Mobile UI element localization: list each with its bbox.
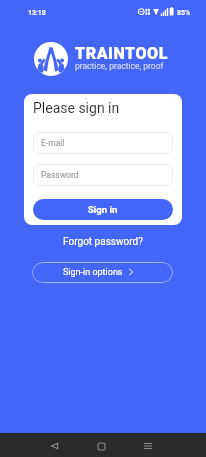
staticText: Sign-in options bbox=[63, 267, 123, 278]
button[interactable]: Home bbox=[85, 436, 117, 456]
button[interactable]: Sign-in options bbox=[32, 262, 173, 283]
button[interactable]: Back bbox=[38, 436, 70, 456]
button[interactable]: Sign in bbox=[33, 199, 173, 220]
staticText: Password bbox=[41, 170, 79, 180]
staticText: Please sign in bbox=[33, 100, 120, 116]
staticText: Forgot password? bbox=[63, 236, 143, 248]
button[interactable]: E-mail bbox=[33, 132, 173, 154]
staticText: practice, practice, proof bbox=[75, 61, 164, 71]
staticText: E-mail bbox=[41, 138, 65, 148]
staticText: TRAINTOOL bbox=[75, 44, 168, 63]
button[interactable]: Forgot password? bbox=[0, 234, 206, 250]
button[interactable]: Password bbox=[33, 164, 173, 186]
staticText: Sign in bbox=[88, 204, 118, 215]
staticText: 13:18 bbox=[28, 9, 46, 17]
button[interactable]: Recent apps bbox=[132, 436, 164, 456]
staticText: 85% bbox=[177, 9, 191, 17]
